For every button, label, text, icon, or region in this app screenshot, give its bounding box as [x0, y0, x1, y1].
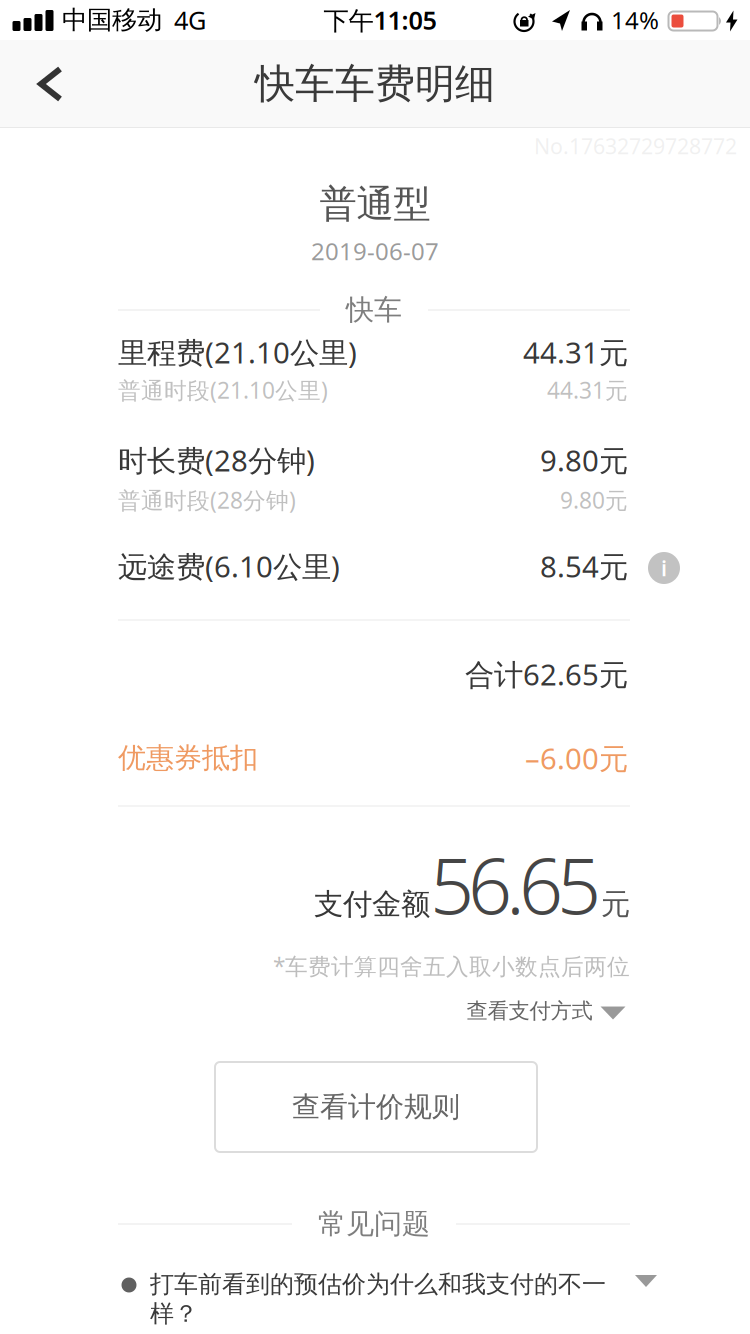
staticText: –6.00元	[525, 738, 628, 777]
staticText: i	[661, 554, 667, 582]
staticText: 下午11:05	[323, 3, 436, 37]
staticText: 快车车费明细	[255, 59, 495, 108]
staticText: 9.80元	[540, 440, 628, 479]
staticText: 常见问题	[318, 1207, 430, 1241]
button[interactable]: 查看支付方式	[466, 998, 625, 1024]
button[interactable]: 远途费说明	[648, 552, 680, 584]
staticText: 支付金额	[314, 886, 430, 922]
staticText: 远途费(6.10公里)	[118, 546, 340, 585]
staticText: 优惠券抵扣	[118, 741, 258, 775]
staticText: 快车	[346, 293, 402, 327]
staticText: *车费计算四舍五入取小数点后两位	[273, 951, 630, 981]
button[interactable]: Back	[0, 40, 92, 128]
staticText: 元	[601, 886, 630, 922]
staticText: No.17632729728772	[534, 132, 737, 160]
button[interactable]: 打车前看到的预估价为什么和我支付的不一 样？	[0, 1254, 750, 1334]
staticText: 查看支付方式	[466, 998, 592, 1024]
staticText: 打车前看到的预估价为什么和我支付的不一 样？	[150, 1269, 606, 1328]
staticText: 2019-06-07	[311, 235, 439, 267]
staticText: 4G	[174, 3, 206, 37]
button[interactable]: 查看计价规则	[215, 1062, 537, 1152]
staticText: 合计62.65元	[465, 654, 628, 693]
staticText: 查看计价规则	[292, 1090, 460, 1124]
staticText: 44.31元	[523, 332, 628, 371]
staticText: 8.54元	[540, 546, 628, 585]
staticText: 普通时段(28分钟)	[118, 485, 296, 515]
staticText: 普通型	[319, 181, 430, 227]
staticText: 时长费(28分钟)	[118, 440, 315, 479]
staticText: 中国移动	[62, 4, 162, 35]
staticText: 56.65	[430, 833, 601, 935]
staticText: 9.80元	[560, 485, 628, 515]
staticText: 14%	[611, 4, 659, 36]
staticText: 普通时段(21.10公里)	[118, 375, 328, 405]
staticText: 里程费(21.10公里)	[118, 332, 357, 371]
staticText: 44.31元	[547, 375, 628, 405]
